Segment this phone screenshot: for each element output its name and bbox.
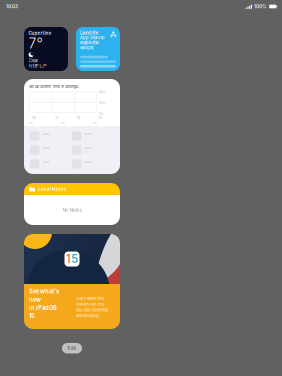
staticText: 60m: [99, 90, 106, 94]
staticText: 15: [29, 313, 35, 319]
staticText: 30m: [99, 101, 106, 105]
staticText: 18: [77, 116, 80, 120]
staticText: and find focus.: [76, 314, 100, 318]
staticText: in iPadOS: [29, 304, 57, 311]
button[interactable]: Local Notes: [24, 183, 120, 225]
staticText: Edit: [67, 345, 76, 351]
staticText: H:18° L:7°: [28, 64, 46, 69]
button[interactable]: Launch the App Store to enable this widg…: [76, 27, 120, 71]
button[interactable]: Cupertino: [24, 27, 68, 71]
staticText: 0m: [99, 111, 104, 116]
staticText: Clear: [28, 58, 38, 63]
staticText: 7°: [28, 35, 42, 52]
staticText: new: [29, 296, 41, 303]
staticText: 12: [55, 116, 58, 120]
staticText: 06: [32, 116, 36, 120]
staticText: features that help: [76, 302, 104, 306]
staticText: 10:03: [6, 4, 18, 9]
staticText: Set up Screen Time in Settings.: [29, 84, 79, 89]
staticText: 100%: [254, 4, 267, 9]
staticText: Launch the App Store to enable this widg…: [80, 30, 104, 50]
staticText: See what's: [29, 288, 59, 295]
button[interactable]: 1: [24, 234, 120, 329]
staticText: 00: [98, 116, 102, 120]
button[interactable]: Edit: [62, 343, 82, 353]
button[interactable]: Set up Screen Time in Settings.: [24, 79, 120, 174]
staticText: No Notes: [62, 207, 81, 213]
staticText: 5: [71, 252, 78, 266]
staticText: Learn about new: [76, 296, 104, 301]
staticText: you stay connected: [76, 308, 108, 312]
staticText: 1: [66, 252, 71, 266]
staticText: Cupertino: [28, 30, 51, 36]
staticText: Local Notes: [38, 186, 67, 192]
